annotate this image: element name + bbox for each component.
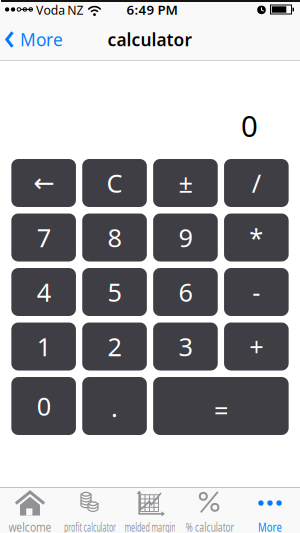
staticText: * (249, 221, 263, 254)
button[interactable]: / (224, 159, 289, 207)
button[interactable]: = (153, 377, 289, 435)
button[interactable]: * (224, 213, 289, 261)
staticText: - (252, 275, 260, 309)
staticText: / (252, 166, 261, 200)
button[interactable]: 6 (153, 268, 218, 316)
staticText: % calculator (176, 519, 244, 533)
staticText: 3 (178, 330, 192, 363)
staticText: 6:49 PM (126, 1, 177, 18)
staticText: ← (33, 169, 54, 197)
button[interactable]: 3 (153, 322, 218, 370)
staticText: More (255, 519, 285, 533)
staticText: welcome (5, 519, 55, 533)
button[interactable]: + (224, 322, 289, 370)
staticText: + (249, 330, 263, 363)
button[interactable]: C (82, 159, 147, 207)
staticText: C (107, 166, 123, 200)
button[interactable]: 8 (82, 213, 147, 261)
button[interactable]: 7 (11, 213, 76, 261)
button[interactable]: ← (11, 159, 76, 207)
staticText: ± (178, 166, 192, 200)
staticText: 4 (37, 275, 51, 309)
staticText: Voda NZ (34, 1, 86, 18)
button[interactable]: - (224, 268, 289, 316)
button[interactable]: 4 (11, 268, 76, 316)
button[interactable]: welcome (0, 488, 60, 533)
staticText: 2 (108, 330, 122, 363)
staticText: 8 (108, 221, 122, 254)
button[interactable]: More (240, 488, 300, 533)
staticText: 5 (108, 275, 122, 309)
staticText: 6 (178, 275, 192, 309)
staticText: 1 (37, 330, 51, 363)
staticText: . (111, 391, 118, 424)
staticText: More (20, 28, 63, 51)
staticText: 7 (37, 221, 51, 254)
button[interactable]: More (0, 28, 63, 51)
staticText: = (214, 394, 228, 427)
staticText: 9 (178, 221, 192, 254)
staticText: 0 (37, 389, 51, 423)
button[interactable]: ± (153, 159, 218, 207)
staticText: melded margin (107, 519, 192, 533)
staticText: profit calculator (46, 519, 134, 533)
button[interactable]: 1 (11, 322, 76, 370)
button[interactable]: . (82, 377, 147, 435)
button[interactable]: % calculator (180, 488, 240, 533)
button[interactable]: 2 (82, 322, 147, 370)
staticText: calculator (107, 28, 192, 51)
button[interactable]: 5 (82, 268, 147, 316)
button[interactable]: 0 (11, 377, 76, 435)
button[interactable]: profit calculator (60, 488, 120, 533)
staticText: 0 (241, 106, 258, 145)
button[interactable]: melded margin (120, 488, 180, 533)
button[interactable]: 9 (153, 213, 218, 261)
